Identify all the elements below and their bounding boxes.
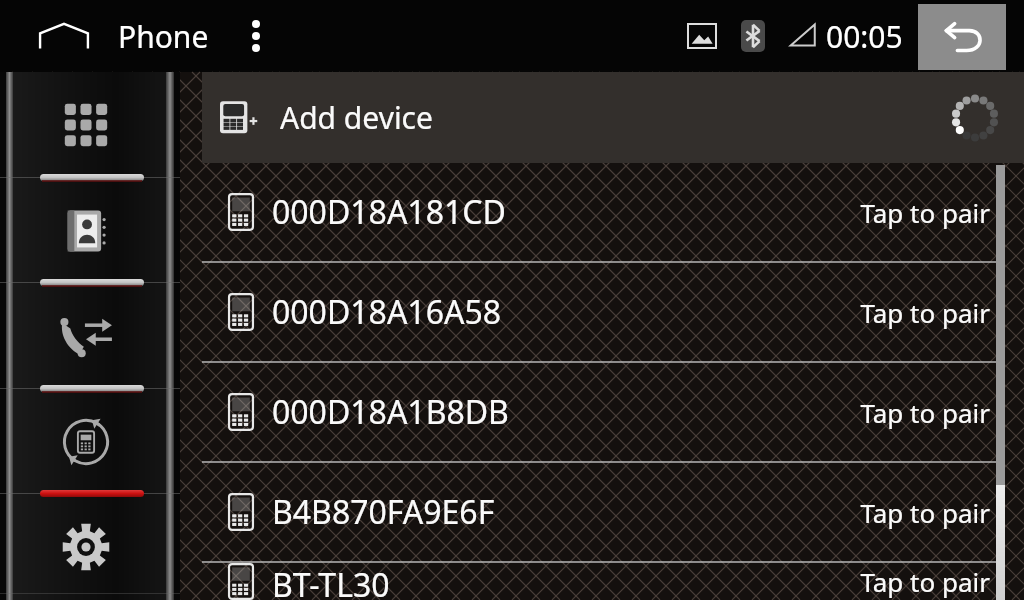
button[interactable]: 000D18A181CD xyxy=(202,163,1024,261)
staticText: Tap to pair xyxy=(860,564,990,599)
button[interactable]: BT-TL30 xyxy=(202,563,1024,600)
button[interactable]: Device xyxy=(0,389,180,495)
button[interactable]: Dialpad xyxy=(0,72,180,178)
button[interactable]: 000D18A16A58 xyxy=(202,263,1024,361)
staticText: 00:05 xyxy=(826,16,903,57)
staticText: 000D18A181CD xyxy=(272,190,506,234)
button[interactable]: 000D18A1B8DB xyxy=(202,363,1024,461)
button[interactable]: Add device xyxy=(202,72,1024,163)
button[interactable]: B4B870FA9E6F xyxy=(202,463,1024,561)
button[interactable]: Media xyxy=(686,20,718,52)
staticText: Tap to pair xyxy=(860,295,990,330)
button[interactable]: Home xyxy=(28,12,100,60)
staticText: 000D18A16A58 xyxy=(272,290,501,334)
other: Scanning xyxy=(948,91,1002,145)
staticText: B4B870FA9E6F xyxy=(272,490,495,534)
staticText: Tap to pair xyxy=(860,395,990,430)
staticText: 000D18A1B8DB xyxy=(272,390,509,434)
button[interactable]: Phone xyxy=(118,8,209,64)
button[interactable]: Settings xyxy=(0,494,180,600)
staticText: Add device xyxy=(280,97,433,138)
button[interactable]: Bluetooth xyxy=(738,16,768,56)
button[interactable]: Call log xyxy=(0,283,180,389)
staticText: Phone xyxy=(118,16,209,57)
staticText: Tap to pair xyxy=(860,495,990,530)
button[interactable]: Signal xyxy=(786,20,820,50)
staticText: Tap to pair xyxy=(860,195,990,230)
button[interactable]: More options xyxy=(236,12,276,60)
button[interactable]: Back xyxy=(918,4,1006,70)
staticText: BT-TL30 xyxy=(272,563,390,600)
button[interactable]: Contacts xyxy=(0,178,180,284)
